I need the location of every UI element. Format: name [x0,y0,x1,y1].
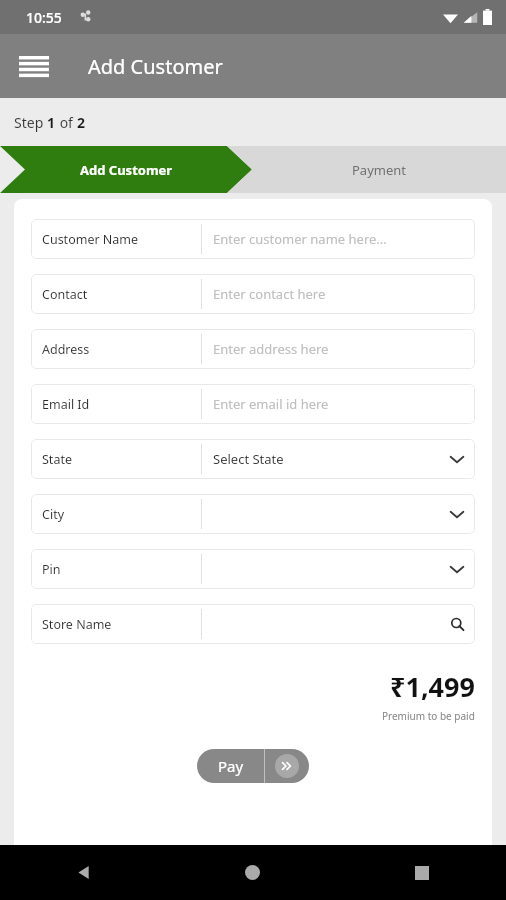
staticText: 1 [47,113,56,132]
staticText: Enter customer name here... [213,230,387,248]
staticText: City [42,506,65,523]
staticText: 2 [77,113,86,132]
staticText: Enter contact here [213,285,326,303]
button[interactable]: Address [31,329,475,369]
staticText: Payment [352,161,407,179]
button[interactable]: Email Id [31,384,475,424]
staticText: Add Customer [80,161,173,179]
staticText: Store Name [42,616,112,633]
staticText: 10:55 [26,8,62,27]
staticText: Premium to be paid [382,709,475,723]
button[interactable]: Payment [253,146,506,193]
staticText: Select State [213,450,284,468]
staticText: Step [14,113,47,132]
button[interactable]: Pin [31,549,475,589]
staticText: State [42,451,72,468]
staticText: of [56,113,77,132]
button[interactable]: Back [0,845,168,900]
button[interactable]: Store Name [31,604,475,644]
staticText: Enter email id here [213,395,329,413]
button[interactable]: Add Customer [0,146,253,193]
staticText: Add Customer [88,53,223,80]
button[interactable]: Customer Name [31,219,475,259]
button[interactable]: City [31,494,475,534]
staticText: Email Id [42,396,90,413]
staticText: Pin [42,561,61,578]
staticText: Enter address here [213,340,329,358]
staticText: Customer Name [42,231,139,248]
button[interactable]: Pay [197,749,309,783]
button[interactable]: Open navigation menu [12,44,56,88]
button[interactable]: Recent apps [337,845,506,900]
button[interactable]: State [31,439,475,479]
button[interactable]: Contact [31,274,475,314]
button[interactable]: Home [168,845,337,900]
staticText: Address [42,341,90,358]
staticText: Pay [218,756,244,776]
staticText: Contact [42,286,88,303]
staticText: ₹1,499 [390,668,475,705]
